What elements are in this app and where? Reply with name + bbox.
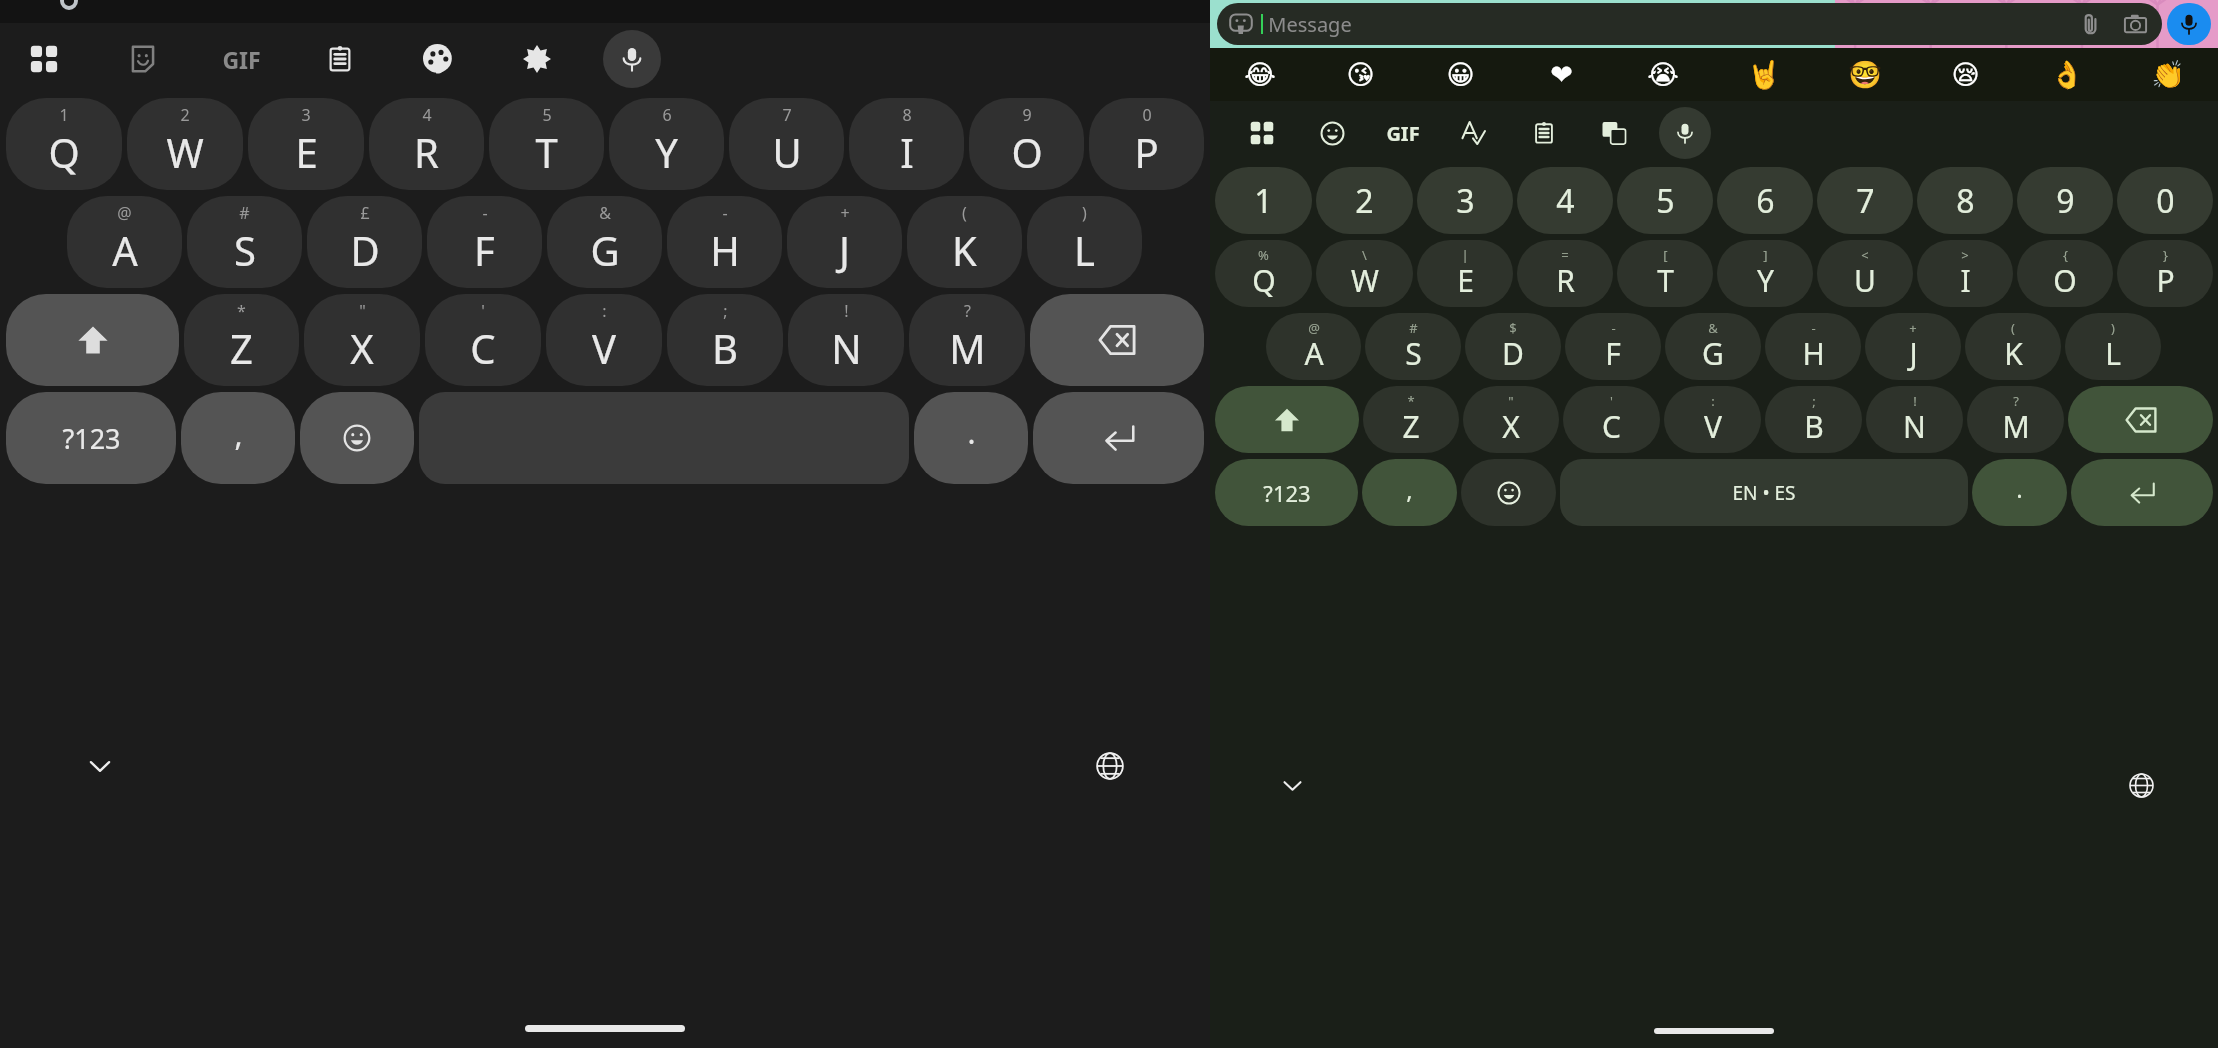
button[interactable]: & (1665, 313, 1761, 380)
button[interactable]: 7 (1817, 167, 1913, 234)
button[interactable]: - (667, 196, 782, 288)
button[interactable]: Voice message (2167, 3, 2211, 45)
button[interactable]: 😂 (1210, 48, 1310, 101)
button[interactable]: @ (67, 196, 182, 288)
button[interactable]: 😭 (1612, 48, 1713, 101)
button[interactable]: ; (667, 294, 783, 386)
button[interactable]: ) (1027, 196, 1142, 288)
button[interactable]: 0 (1089, 98, 1204, 190)
button[interactable]: = (1517, 240, 1613, 307)
button[interactable]: ( (907, 196, 1022, 288)
button[interactable]: Backspace (1030, 294, 1204, 386)
button[interactable]: 😘 (1310, 48, 1410, 101)
button[interactable]: Camera (2120, 9, 2150, 39)
button[interactable]: + (787, 196, 902, 288)
button[interactable]: Voice input (603, 30, 661, 88)
button[interactable]: 2 (127, 98, 243, 190)
button[interactable]: # (187, 196, 302, 288)
button[interactable]: GIF (1377, 107, 1429, 159)
button[interactable]: - (1765, 313, 1861, 380)
button[interactable]: " (304, 294, 420, 386)
button[interactable]: 4 (369, 98, 484, 190)
button[interactable]: [ (1617, 240, 1713, 307)
button[interactable]: Clipboard (311, 30, 369, 88)
button[interactable]: Stickers (114, 30, 172, 88)
button[interactable]: Hide keyboard (1270, 763, 1314, 807)
button[interactable]: 🤓 (1814, 48, 1915, 101)
button[interactable]: - (1565, 313, 1661, 380)
button[interactable]: ❤️ (1511, 48, 1612, 101)
button[interactable]: Voice input (1659, 107, 1711, 159)
button[interactable]: Shift (1215, 386, 1359, 453)
button[interactable]: * (1363, 386, 1459, 453)
button[interactable]: Space (419, 392, 909, 484)
button[interactable]: Themes (409, 30, 467, 88)
button[interactable]: } (2117, 240, 2213, 307)
button[interactable]: , (181, 392, 295, 484)
button[interactable]: Change language (2119, 763, 2163, 807)
button[interactable]: 9 (969, 98, 1084, 190)
button[interactable]: GIF (212, 30, 270, 88)
button[interactable]: - (427, 196, 542, 288)
button[interactable]: Change language (1086, 742, 1134, 790)
button[interactable]: ? (909, 294, 1025, 386)
button[interactable]: 8 (1917, 167, 2013, 234)
button[interactable]: Space (1560, 459, 1968, 526)
button[interactable]: Emoji (300, 392, 414, 484)
button[interactable]: Hide keyboard (76, 742, 124, 790)
button[interactable]: Attach (2076, 9, 2106, 39)
button[interactable]: 3 (248, 98, 364, 190)
button[interactable]: $ (1465, 313, 1561, 380)
button[interactable]: 5 (489, 98, 604, 190)
button[interactable]: Settings (508, 30, 566, 88)
button[interactable]: ? (1967, 386, 2064, 453)
button[interactable]: 9 (2017, 167, 2113, 234)
button[interactable]: 👏 (2117, 48, 2218, 101)
button[interactable]: 1 (1215, 167, 1312, 234)
button[interactable]: * (184, 294, 299, 386)
button[interactable]: ) (2065, 313, 2161, 380)
button[interactable]: 2 (1316, 167, 1413, 234)
button[interactable]: 😀 (1410, 48, 1511, 101)
button[interactable]: 👌 (2016, 48, 2117, 101)
button[interactable]: 8 (849, 98, 964, 190)
button[interactable]: Shift (6, 294, 179, 386)
button[interactable]: 7 (729, 98, 844, 190)
button[interactable]: ' (1563, 386, 1660, 453)
button[interactable]: 6 (1717, 167, 1813, 234)
button[interactable]: < (1817, 240, 1913, 307)
button[interactable]: { (2017, 240, 2113, 307)
button[interactable]: \ (1316, 240, 1413, 307)
button[interactable]: ! (1866, 386, 1963, 453)
button[interactable]: ; (1765, 386, 1862, 453)
button[interactable]: Translate (1588, 107, 1640, 159)
button[interactable]: ! (788, 294, 904, 386)
button[interactable]: Enter (2071, 459, 2213, 526)
button[interactable]: @ (1266, 313, 1361, 380)
button[interactable]: > (1917, 240, 2013, 307)
button[interactable]: ' (425, 294, 541, 386)
button[interactable]: # (1365, 313, 1461, 380)
button[interactable]: Apps (15, 30, 73, 88)
button[interactable]: | (1417, 240, 1513, 307)
button[interactable]: + (1865, 313, 1961, 380)
button[interactable]: Backspace (2068, 386, 2213, 453)
button[interactable]: 😪 (1915, 48, 2016, 101)
button[interactable]: Emoji (1306, 107, 1358, 159)
button[interactable]: 1 (6, 98, 122, 190)
button[interactable]: % (1215, 240, 1312, 307)
button[interactable]: Clipboard (1518, 107, 1570, 159)
button[interactable]: £ (307, 196, 422, 288)
button[interactable]: : (546, 294, 662, 386)
button[interactable]: Emoji (1461, 459, 1556, 526)
button[interactable]: 🤘 (1713, 48, 1814, 101)
button[interactable]: Spell check (1447, 107, 1499, 159)
button[interactable]: ?123 (1215, 459, 1358, 526)
button[interactable]: 5 (1617, 167, 1713, 234)
button[interactable]: . (1972, 459, 2067, 526)
button[interactable]: 4 (1517, 167, 1613, 234)
button[interactable]: Message (1217, 3, 2162, 45)
button[interactable]: ?123 (6, 392, 176, 484)
button[interactable]: 0 (2117, 167, 2213, 234)
button[interactable]: : (1664, 386, 1761, 453)
